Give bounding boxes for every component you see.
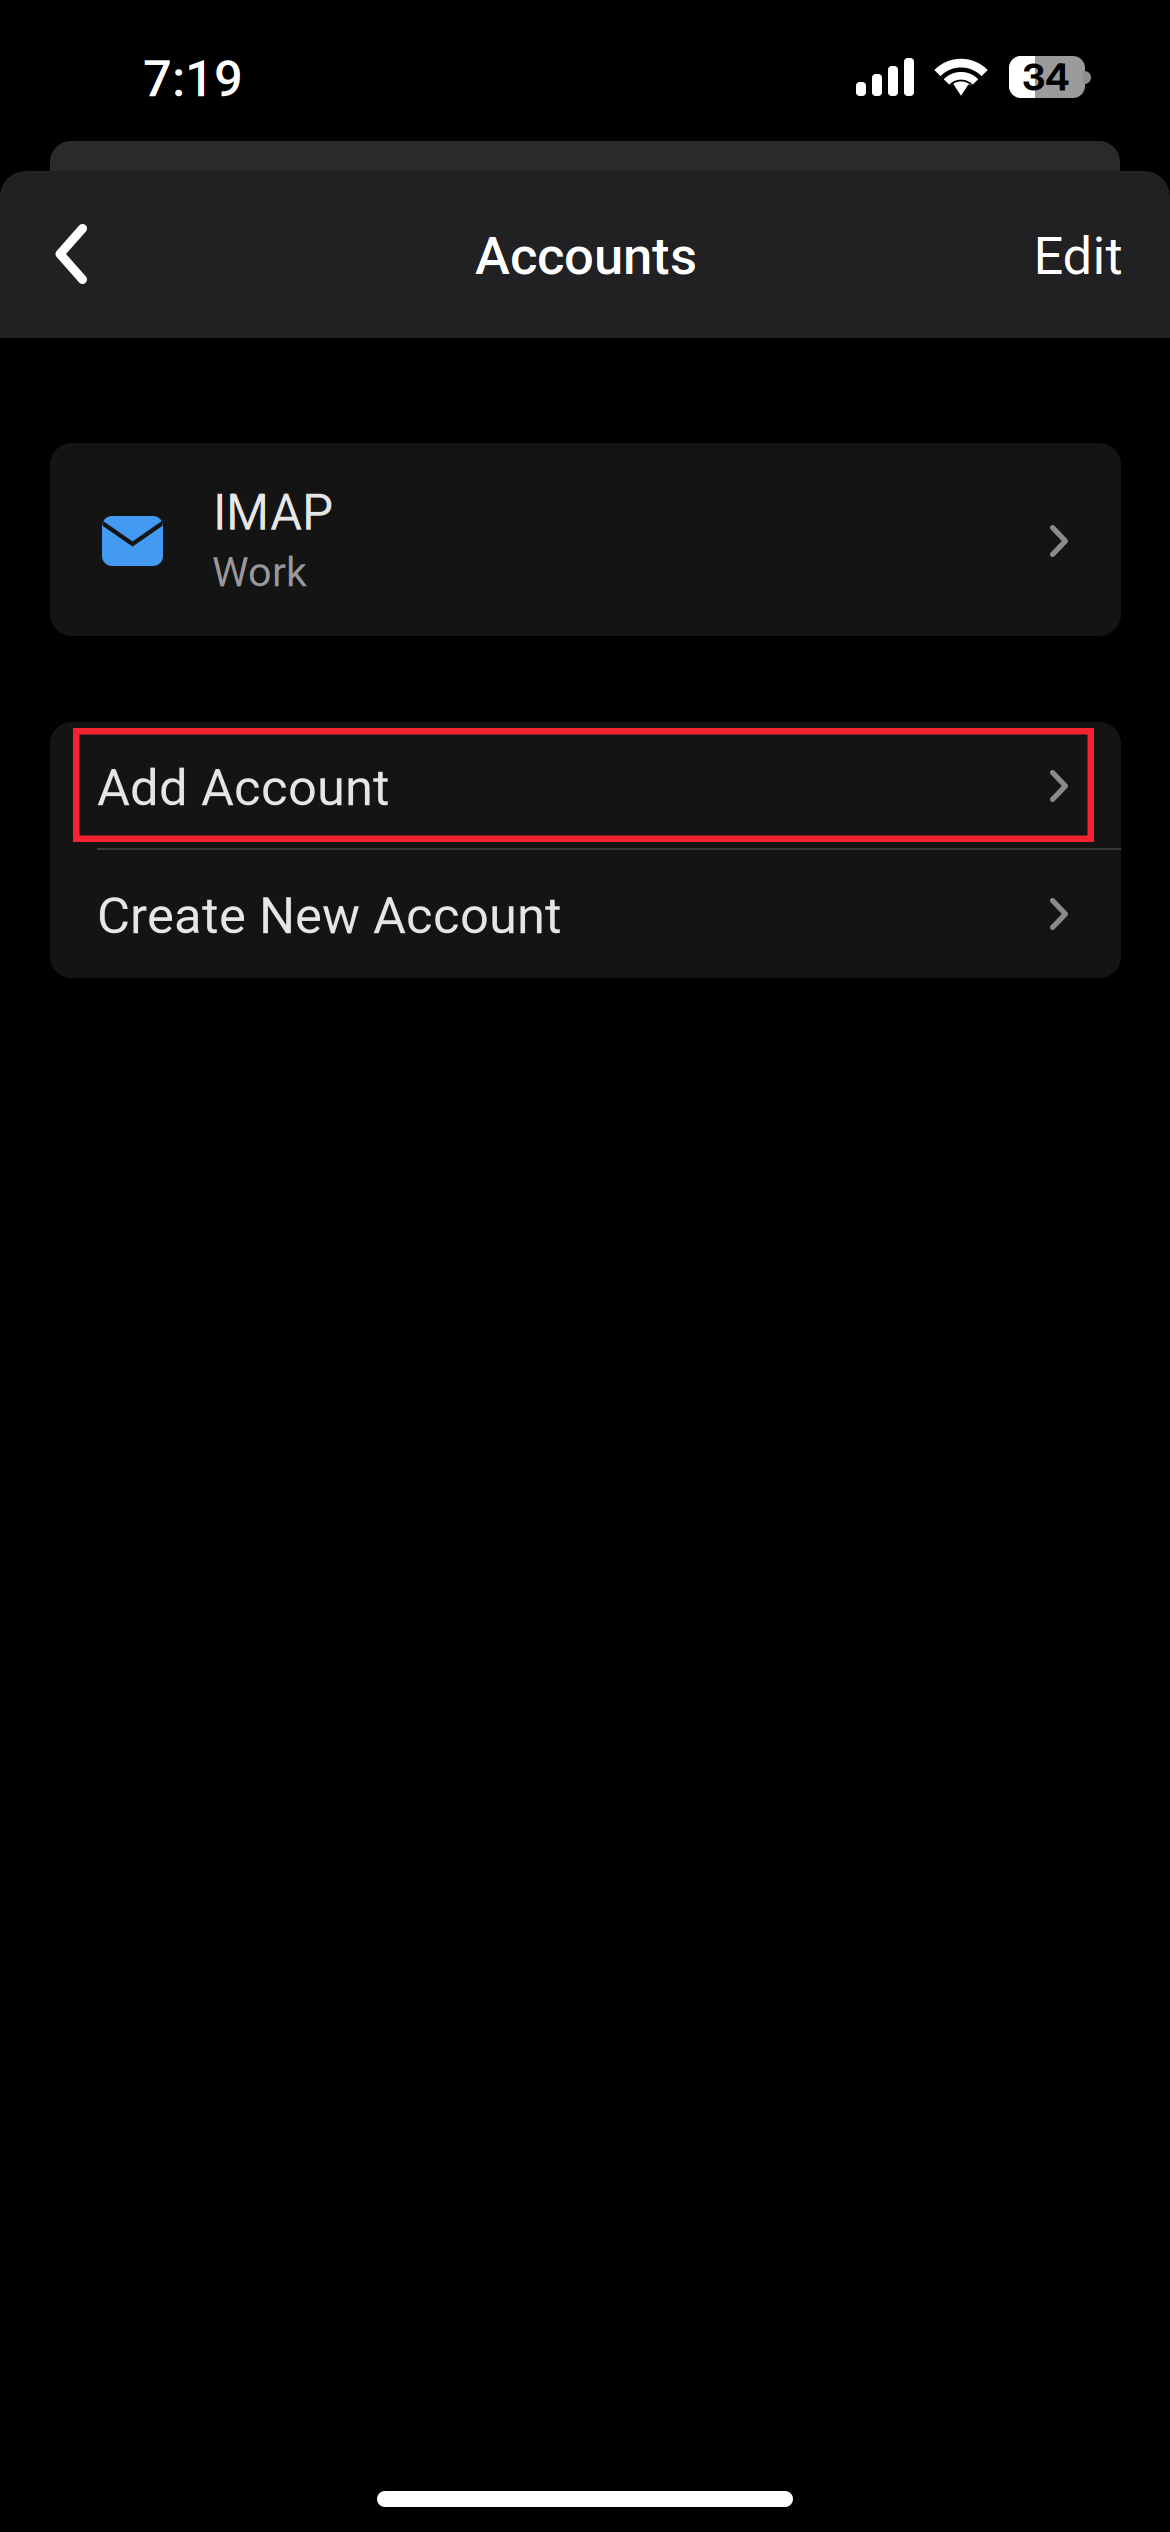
staticText: IMAP: [213, 484, 333, 542]
button[interactable]: IMAP: [50, 443, 1121, 636]
staticText: 34: [1022, 54, 1070, 100]
staticText: Accounts: [475, 225, 697, 287]
button[interactable]: Back: [20, 194, 122, 314]
staticText: Work: [212, 548, 307, 596]
staticText: Edit: [1033, 225, 1122, 287]
button[interactable]: Create New Account: [50, 850, 1121, 978]
button[interactable]: Add Account: [50, 722, 1121, 849]
staticText: Create New Account: [97, 886, 562, 946]
button[interactable]: Edit: [1014, 196, 1142, 316]
staticText: Add Account: [97, 758, 390, 818]
staticText: 7:19: [143, 49, 243, 109]
